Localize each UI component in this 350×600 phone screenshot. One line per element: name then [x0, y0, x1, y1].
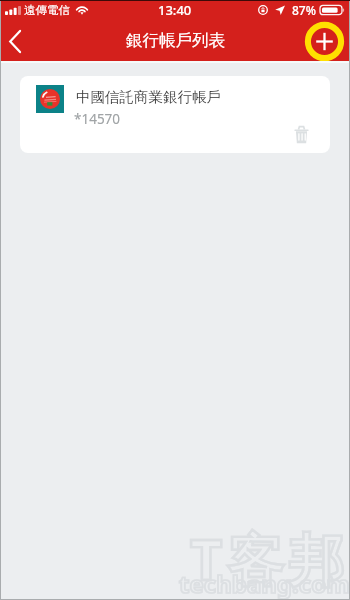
button[interactable]: 中國信託商業銀行帳戶: [20, 76, 330, 153]
button[interactable]: Add account: [304, 21, 344, 61]
staticText: T客邦: [190, 520, 350, 596]
staticText: techbang.com: [179, 567, 350, 600]
button[interactable]: Delete: [288, 122, 314, 148]
staticText: 13:40: [158, 1, 192, 19]
staticText: 87%: [292, 2, 316, 18]
staticText: 遠傳電信: [24, 3, 70, 17]
staticText: 中國信託商業銀行帳戶: [76, 88, 221, 106]
staticText: *14570: [74, 110, 121, 128]
button[interactable]: Back: [0, 24, 34, 58]
staticText: 銀行帳戶列表: [126, 30, 225, 51]
